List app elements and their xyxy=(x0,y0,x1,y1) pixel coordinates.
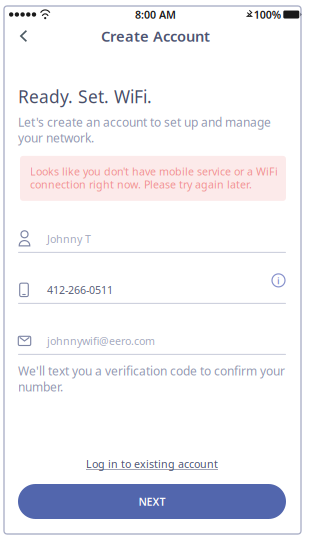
staticText: Looks like you don't have mobile service… xyxy=(30,164,278,178)
staticText: connection right now. Please try again l… xyxy=(30,177,252,191)
staticText: johnnywifi@eero.com xyxy=(47,334,155,348)
staticText: NEXT xyxy=(138,494,165,509)
staticText: i xyxy=(277,274,280,287)
staticText: Johnny T xyxy=(47,232,91,246)
staticText: Log in to existing account xyxy=(86,457,218,471)
staticText: We'll text you a verification code to co… xyxy=(18,363,285,395)
staticText: 412-266-0511 xyxy=(47,283,113,297)
staticText: 100% xyxy=(254,7,281,22)
staticText: Ready. Set. WiFi. xyxy=(18,85,152,108)
staticText: Create Account xyxy=(101,26,210,46)
button[interactable]: NEXT xyxy=(18,484,286,519)
button[interactable]: Phone number info xyxy=(271,273,286,288)
button[interactable]: Back xyxy=(0,23,39,49)
button[interactable]: Log in to existing account xyxy=(18,452,286,476)
staticText: 8:00 AM xyxy=(135,7,176,22)
staticText: Let's create an account to set up and ma… xyxy=(18,114,271,146)
